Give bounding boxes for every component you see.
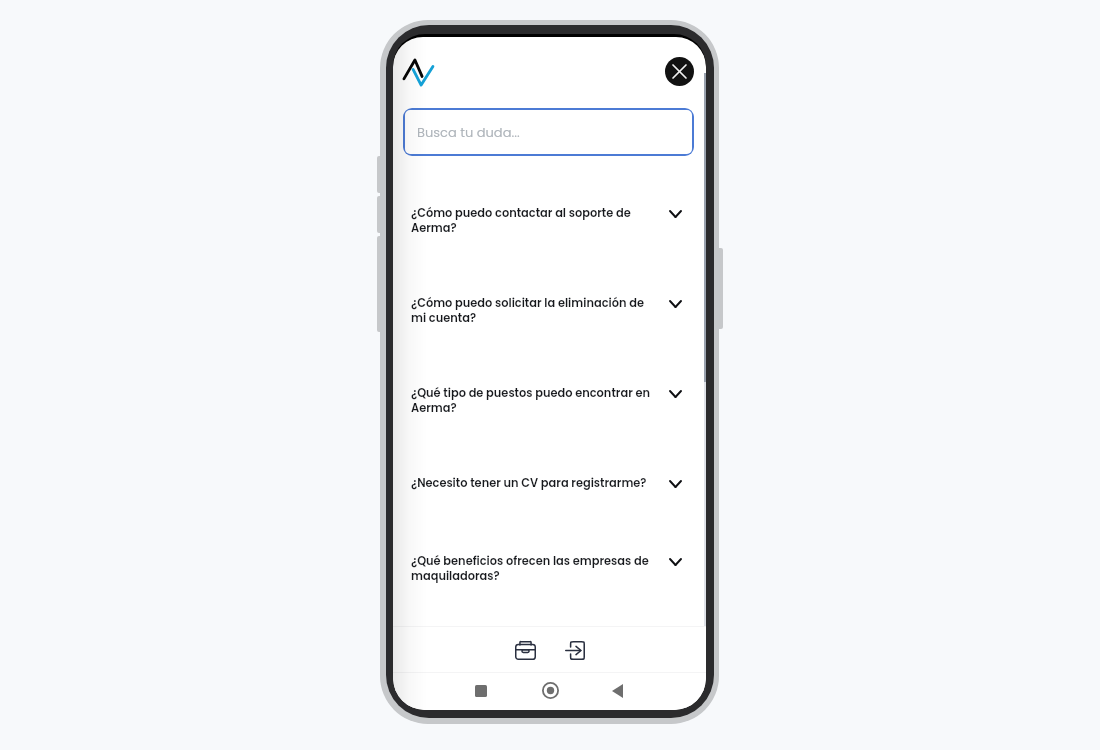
- button[interactable]: Cerrar: [665, 57, 694, 86]
- button[interactable]: Iniciar sesion: [557, 630, 593, 670]
- button[interactable]: Aerma: [403, 59, 434, 86]
- staticText: ¿Qué beneficios ofrecen las empresas de …: [411, 554, 659, 584]
- staticText: ¿Cómo puedo contactar al soporte de Aerm…: [411, 206, 659, 236]
- staticText: ¿Qué tipo de puestos puedo encontrar en …: [411, 386, 659, 416]
- staticText: Busca tu duda...: [417, 123, 520, 141]
- button[interactable]: Empleos: [507, 630, 543, 670]
- staticText: ¿Cómo puedo solicitar la eliminación de …: [411, 296, 659, 326]
- button[interactable]: Inicio: [542, 682, 559, 699]
- button[interactable]: ¿Cómo puedo contactar al soporte de Aerm…: [393, 206, 706, 296]
- button[interactable]: ¿Qué beneficios ofrecen las empresas de …: [393, 554, 706, 626]
- button[interactable]: ¿Cómo puedo solicitar la eliminación de …: [393, 296, 706, 386]
- button[interactable]: Atras: [612, 684, 623, 698]
- button[interactable]: ¿Necesito tener un CV para registrarme?: [393, 476, 706, 554]
- staticText: ¿Necesito tener un CV para registrarme?: [411, 476, 659, 491]
- button[interactable]: ¿Qué tipo de puestos puedo encontrar en …: [393, 386, 706, 476]
- button[interactable]: Recientes: [475, 685, 487, 697]
- button[interactable]: Busca tu duda...: [403, 108, 694, 156]
